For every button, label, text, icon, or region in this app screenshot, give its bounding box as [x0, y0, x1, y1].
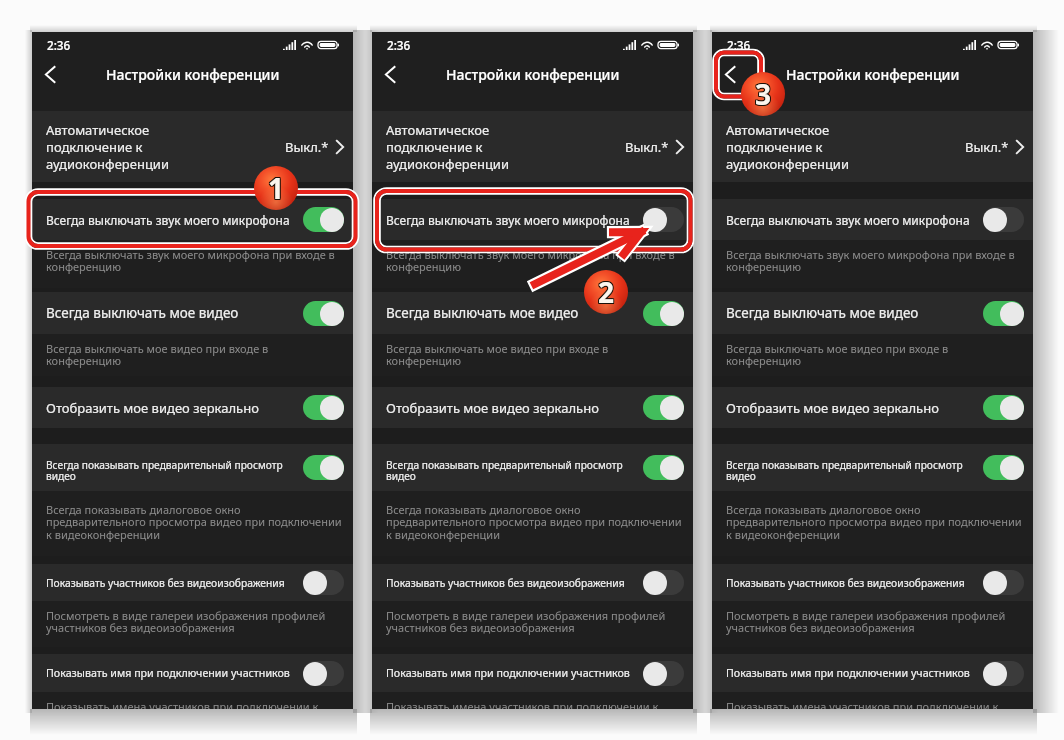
staticText: 3: [754, 74, 771, 112]
staticText: Всегда выключать звук моего микрофона: [386, 212, 637, 228]
staticText: 3: [755, 74, 772, 112]
staticText: Показывать имена участников при подключе…: [726, 699, 999, 709]
staticText: 2: [597, 274, 614, 312]
staticText: 2: [599, 274, 616, 312]
staticText: Всегда выключать звук моего микрофона: [726, 212, 977, 228]
staticText: Посмотреть в виде галереи изображения пр…: [46, 608, 326, 635]
staticText: Всегда выключать мое видео: [386, 304, 637, 322]
staticText: Посмотреть в виде галереи изображения пр…: [726, 608, 1006, 635]
button[interactable]: Всегда выключать мое видео: [372, 292, 693, 334]
staticText: 1: [268, 170, 285, 208]
staticText: Выкл.*: [965, 138, 1009, 156]
button[interactable]: Показывать имя при подключении участнико…: [372, 654, 693, 692]
button[interactable]: Назад: [715, 59, 745, 89]
button[interactable]: Назад: [375, 59, 405, 89]
button[interactable]: Показывать имя при подключении участнико…: [32, 654, 353, 692]
button[interactable]: Автоматическое подключение к аудиоконфер…: [372, 111, 693, 182]
button[interactable]: Отобразить мое видео зеркально: [712, 387, 1033, 428]
button[interactable]: Всегда выключать мое видео: [32, 292, 353, 334]
button[interactable]: Показывать имя при подключении участнико…: [712, 654, 1033, 692]
staticText: Всегда показывать предварительный просмо…: [46, 458, 297, 483]
staticText: Всегда показывать диалоговое окно предва…: [726, 502, 1022, 542]
staticText: Всегда выключать мое видео: [726, 304, 977, 322]
staticText: 1: [267, 170, 284, 208]
staticText: 2:36: [387, 37, 411, 53]
staticText: Всегда выключать мое видео при входе в к…: [726, 341, 949, 368]
staticText: Всегда выключать мое видео: [46, 304, 297, 322]
staticText: Настройки конференции: [786, 65, 960, 84]
staticText: 1: [269, 169, 286, 207]
staticText: Всегда выключать звук моего микрофона пр…: [726, 247, 1015, 274]
staticText: Всегда выключать звук моего микрофона пр…: [386, 247, 675, 274]
staticText: Автоматическое подключение к аудиоконфер…: [46, 121, 285, 173]
staticText: 2: [598, 274, 615, 312]
staticText: 1: [267, 169, 284, 207]
button[interactable]: Автоматическое подключение к аудиоконфер…: [32, 111, 353, 182]
staticText: Всегда выключать мое видео при входе в к…: [46, 341, 269, 368]
button[interactable]: Автоматическое подключение к аудиоконфер…: [712, 111, 1033, 182]
staticText: 3: [754, 76, 771, 114]
staticText: Всегда показывать предварительный просмо…: [386, 458, 637, 483]
staticText: Показывать участников без видеоизображен…: [386, 576, 637, 590]
staticText: Отобразить мое видео зеркально: [386, 399, 637, 417]
button[interactable]: Всегда показывать предварительный просмо…: [712, 444, 1033, 491]
button[interactable]: Всегда выключать мое видео: [712, 292, 1033, 334]
staticText: Выкл.*: [625, 138, 669, 156]
staticText: 3: [754, 75, 771, 113]
staticText: 1: [269, 168, 286, 206]
staticText: Показывать имя при подключении участнико…: [46, 666, 297, 681]
staticText: 1: [267, 168, 284, 206]
staticText: Показывать имена участников при подключе…: [386, 699, 659, 709]
staticText: 2:36: [727, 37, 751, 53]
staticText: 1: [268, 169, 285, 207]
staticText: 3: [756, 75, 773, 113]
button[interactable]: Отобразить мое видео зеркально: [32, 387, 353, 428]
button[interactable]: Показывать участников без видеоизображен…: [712, 564, 1033, 601]
button[interactable]: Всегда выключать звук моего микрофона: [32, 199, 353, 240]
staticText: 2: [599, 272, 616, 310]
staticText: 2:36: [47, 37, 71, 53]
staticText: Выкл.*: [285, 138, 329, 156]
staticText: Отобразить мое видео зеркально: [726, 399, 977, 417]
staticText: 3: [755, 75, 772, 113]
staticText: Всегда показывать диалоговое окно предва…: [386, 502, 682, 542]
staticText: 3: [755, 76, 772, 114]
staticText: Показывать имя при подключении участнико…: [726, 666, 977, 681]
staticText: Всегда показывать предварительный просмо…: [726, 458, 977, 483]
staticText: 1: [269, 170, 286, 208]
button[interactable]: Показывать участников без видеоизображен…: [372, 564, 693, 601]
staticText: Автоматическое подключение к аудиоконфер…: [386, 121, 625, 173]
staticText: Автоматическое подключение к аудиоконфер…: [726, 121, 965, 173]
staticText: Всегда выключать мое видео при входе в к…: [386, 341, 609, 368]
staticText: Всегда выключать звук моего микрофона: [46, 212, 297, 228]
staticText: 2: [598, 273, 615, 311]
button[interactable]: Назад: [35, 59, 65, 89]
staticText: Настройки конференции: [446, 65, 620, 84]
staticText: 2: [598, 272, 615, 310]
staticText: Посмотреть в виде галереи изображения пр…: [386, 608, 666, 635]
staticText: 2: [597, 273, 614, 311]
staticText: Всегда показывать диалоговое окно предва…: [46, 502, 342, 542]
staticText: Показывать участников без видеоизображен…: [46, 576, 297, 590]
staticText: Отобразить мое видео зеркально: [46, 399, 297, 417]
button[interactable]: Всегда выключать звук моего микрофона: [372, 199, 693, 240]
staticText: 2: [597, 272, 614, 310]
staticText: Показывать участников без видеоизображен…: [726, 576, 977, 590]
button[interactable]: Всегда выключать звук моего микрофона: [712, 199, 1033, 240]
button[interactable]: Показывать участников без видеоизображен…: [32, 564, 353, 601]
button[interactable]: Всегда показывать предварительный просмо…: [32, 444, 353, 491]
button[interactable]: Всегда показывать предварительный просмо…: [372, 444, 693, 491]
staticText: 3: [756, 76, 773, 114]
staticText: Показывать имена участников при подключе…: [46, 699, 319, 709]
staticText: Показывать имя при подключении участнико…: [386, 666, 637, 681]
staticText: Настройки конференции: [106, 65, 280, 84]
staticText: 3: [756, 74, 773, 112]
button[interactable]: Отобразить мое видео зеркально: [372, 387, 693, 428]
staticText: 1: [268, 168, 285, 206]
staticText: 2: [599, 273, 616, 311]
staticText: Всегда выключать звук моего микрофона пр…: [46, 247, 335, 274]
